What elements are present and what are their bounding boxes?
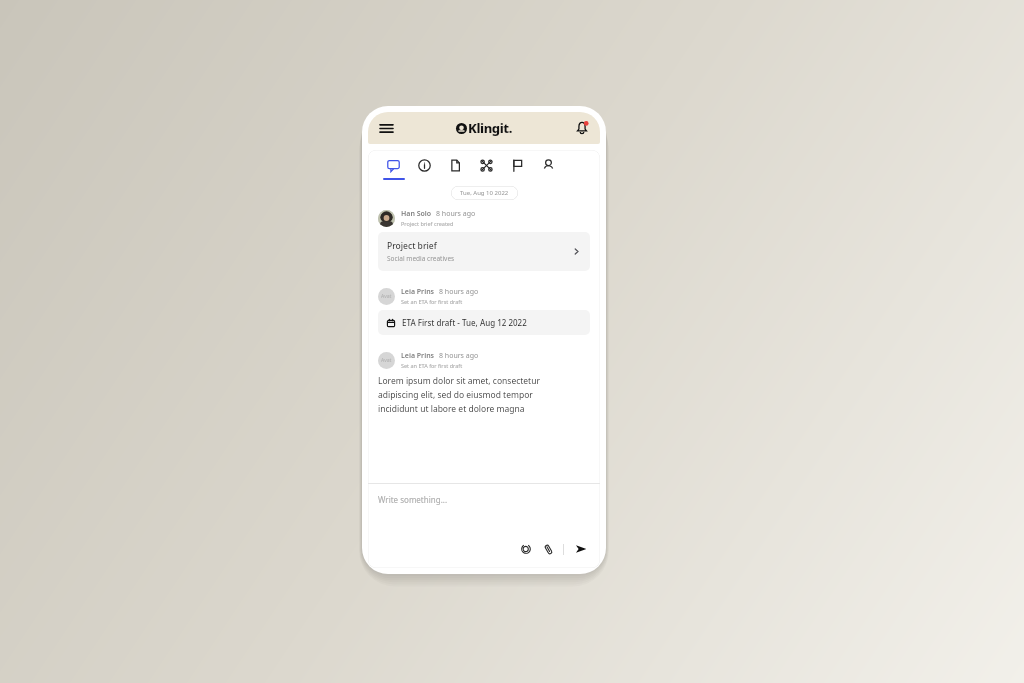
staticText: Lorem ipsum dolor sit amet, consectetur … [378, 375, 540, 415]
button[interactable]: Send [572, 540, 590, 558]
button[interactable]: Chat [378, 150, 409, 180]
button[interactable]: Info [409, 150, 440, 180]
button[interactable]: ETA First draft - Tue, Aug 12 2022 [378, 310, 590, 335]
staticText: ETA First draft - Tue, Aug 12 2022 [402, 317, 527, 328]
staticText: Avat [381, 293, 392, 300]
staticText: 8 hours ago [439, 287, 479, 297]
staticText: Klingit. [468, 119, 513, 137]
button[interactable]: Menu [376, 118, 396, 138]
button[interactable]: People [533, 150, 564, 180]
button[interactable]: Mention [518, 541, 534, 557]
staticText: Project brief created [401, 220, 454, 227]
staticText: 8 hours ago [439, 351, 479, 361]
staticText: Write something... [378, 494, 448, 505]
staticText: 8 hours ago [436, 209, 476, 219]
staticText: Social media creatives [387, 254, 455, 263]
staticText: Set an ETA for first draft [401, 298, 463, 305]
button[interactable]: Attach file [540, 541, 556, 557]
button[interactable]: Flags [502, 150, 533, 180]
staticText: Leia Prins [401, 351, 435, 361]
button[interactable]: Tasks [471, 150, 502, 180]
button[interactable]: Project brief [378, 232, 590, 271]
staticText: Tue, Aug 10 2022 [460, 189, 509, 197]
staticText: Han Solo [401, 209, 432, 219]
staticText: Project brief [387, 240, 437, 252]
button[interactable]: Write something... [378, 494, 590, 540]
button[interactable]: Notifications [572, 118, 592, 138]
staticText: Leia Prins [401, 287, 435, 297]
button[interactable]: Files [440, 150, 471, 180]
staticText: Avat [381, 357, 392, 364]
staticText: Set an ETA for first draft [401, 362, 463, 369]
